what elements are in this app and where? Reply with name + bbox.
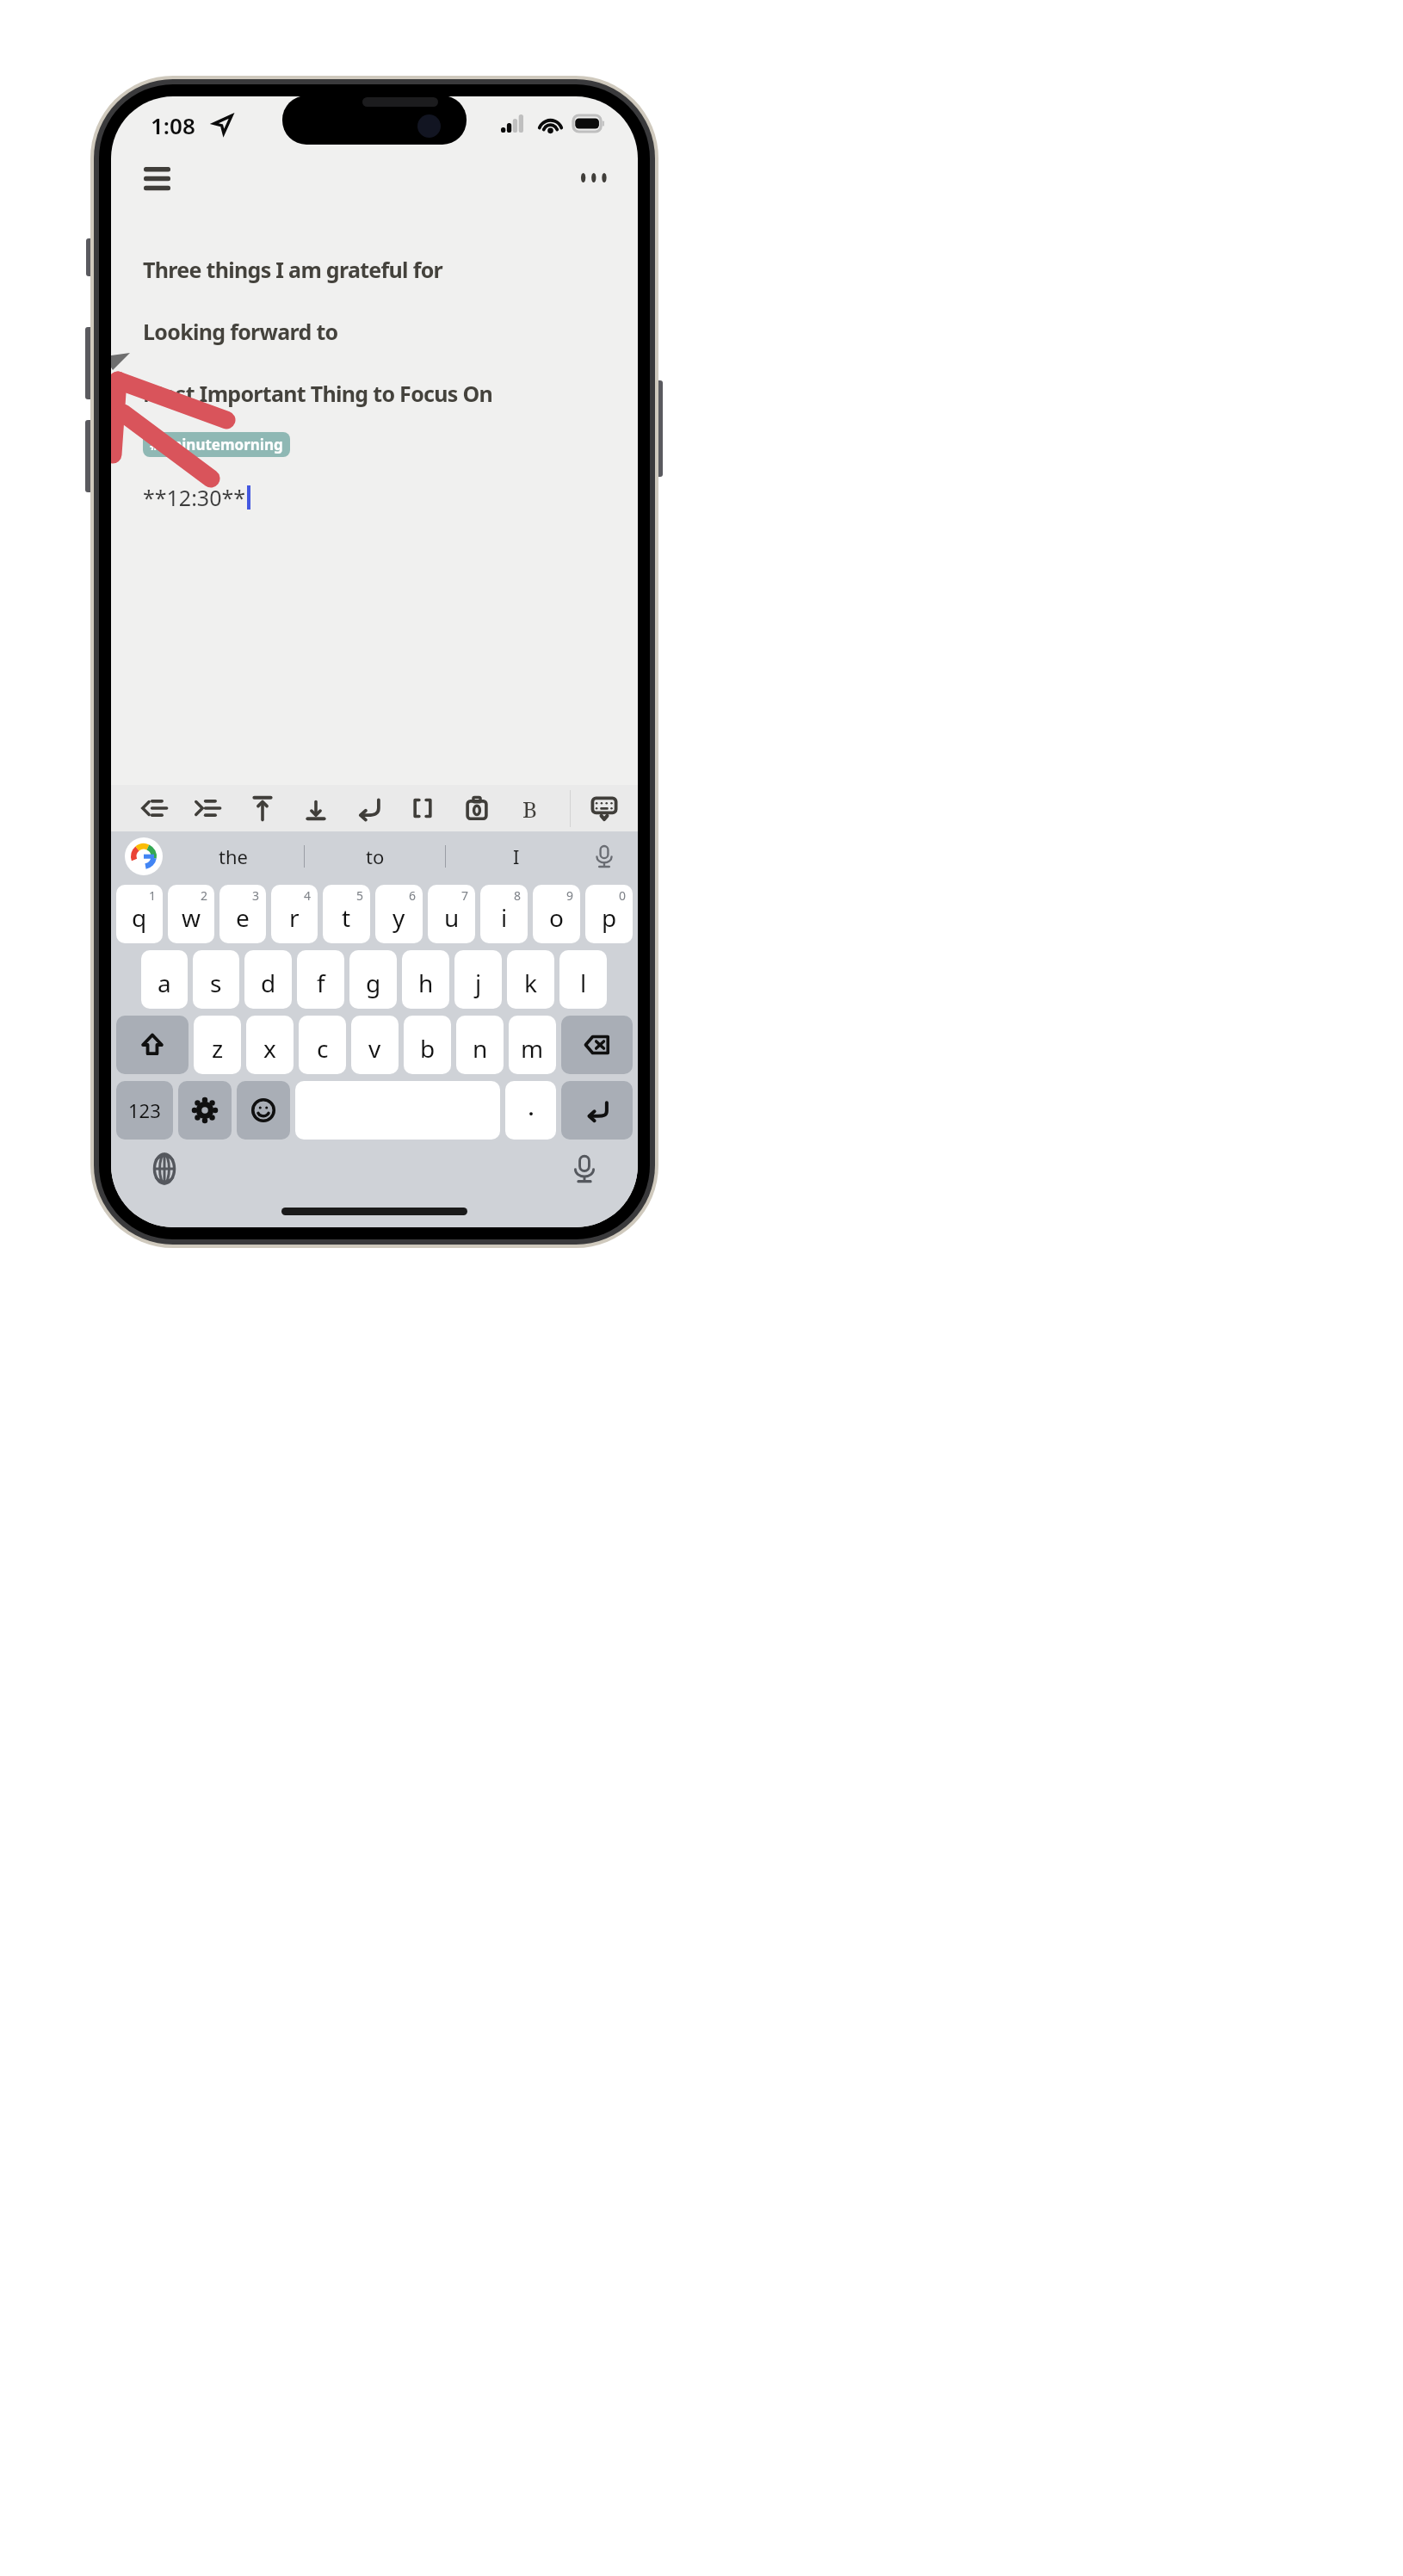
staticText: c bbox=[317, 1032, 329, 1065]
button[interactable]: p bbox=[585, 885, 633, 943]
button[interactable]: New line bbox=[355, 794, 384, 823]
button[interactable]: Space bbox=[295, 1081, 500, 1140]
button[interactable]: Bold bbox=[516, 794, 545, 823]
button[interactable]: More options bbox=[569, 152, 619, 202]
staticText: b bbox=[420, 1032, 436, 1065]
staticText: 7 bbox=[461, 887, 469, 904]
button[interactable]: Menu bbox=[132, 152, 182, 202]
button[interactable]: Period bbox=[505, 1081, 556, 1140]
staticText: o bbox=[549, 901, 564, 934]
button[interactable]: r bbox=[271, 885, 318, 943]
staticText: p bbox=[602, 901, 617, 934]
staticText: m bbox=[521, 1032, 544, 1065]
staticText: **12:30** bbox=[143, 483, 246, 512]
button[interactable]: Move to top bbox=[248, 794, 277, 823]
button[interactable]: Shift bbox=[116, 1016, 189, 1074]
button[interactable]: Hide keyboard bbox=[571, 785, 638, 831]
staticText: g bbox=[366, 967, 381, 999]
staticText: d bbox=[261, 967, 276, 999]
button[interactable]: i bbox=[480, 885, 528, 943]
button[interactable]: Google bbox=[125, 837, 163, 875]
staticText: 3 bbox=[252, 887, 260, 904]
staticText: 9 bbox=[566, 887, 574, 904]
button[interactable]: l bbox=[559, 950, 607, 1009]
button[interactable]: Change language bbox=[144, 1148, 185, 1189]
button[interactable]: h bbox=[402, 950, 449, 1009]
staticText: i bbox=[501, 901, 508, 934]
button[interactable]: Brackets bbox=[408, 794, 437, 823]
button[interactable]: s bbox=[193, 950, 239, 1009]
staticText: I bbox=[513, 843, 520, 869]
staticText: q bbox=[132, 901, 147, 934]
button[interactable]: w bbox=[168, 885, 214, 943]
button[interactable]: Settings bbox=[178, 1081, 232, 1140]
button[interactable]: Emoji bbox=[237, 1081, 290, 1140]
staticText: y bbox=[392, 901, 405, 934]
button[interactable]: k bbox=[507, 950, 554, 1009]
staticText: v bbox=[368, 1032, 381, 1065]
staticText: k bbox=[524, 967, 537, 999]
button[interactable]: n bbox=[456, 1016, 504, 1074]
button[interactable]: v bbox=[351, 1016, 399, 1074]
button[interactable]: I bbox=[446, 831, 586, 881]
staticText: r bbox=[289, 901, 300, 934]
staticText: n bbox=[473, 1032, 488, 1065]
button[interactable]: u bbox=[428, 885, 475, 943]
staticText: w bbox=[182, 901, 201, 934]
button[interactable]: z bbox=[194, 1016, 241, 1074]
button[interactable]: y bbox=[375, 885, 423, 943]
button[interactable]: #3minutemorning bbox=[143, 432, 290, 457]
button[interactable]: Voice typing bbox=[564, 1148, 605, 1189]
button[interactable]: j bbox=[454, 950, 502, 1009]
staticText: u bbox=[444, 901, 460, 934]
button[interactable]: o bbox=[533, 885, 580, 943]
button[interactable]: Backspace bbox=[561, 1016, 633, 1074]
staticText: 8 bbox=[514, 887, 522, 904]
staticText: to bbox=[366, 843, 385, 869]
button[interactable]: to bbox=[305, 831, 445, 881]
button[interactable]: Camera bbox=[462, 794, 491, 823]
button[interactable]: b bbox=[404, 1016, 451, 1074]
button[interactable]: a bbox=[141, 950, 188, 1009]
staticText: e bbox=[236, 901, 250, 934]
button[interactable]: Looking forward to bbox=[143, 317, 338, 346]
button[interactable]: Enter bbox=[561, 1081, 633, 1140]
staticText: 6 bbox=[409, 887, 417, 904]
staticText: 1:08 bbox=[151, 110, 195, 140]
staticText: s bbox=[210, 967, 222, 999]
button[interactable]: 123 bbox=[116, 1081, 173, 1140]
button[interactable]: Move to bottom bbox=[301, 794, 331, 823]
button[interactable]: Outdent bbox=[140, 794, 170, 823]
button[interactable]: q bbox=[116, 885, 163, 943]
button[interactable]: Three things I am grateful for bbox=[143, 255, 443, 284]
staticText: t bbox=[342, 901, 351, 934]
staticText: 2 bbox=[201, 887, 208, 904]
staticText: 123 bbox=[128, 1097, 161, 1123]
button[interactable]: m bbox=[509, 1016, 556, 1074]
button[interactable]: the bbox=[163, 831, 304, 881]
button[interactable]: g bbox=[349, 950, 397, 1009]
staticText: the bbox=[219, 843, 248, 869]
staticText: 5 bbox=[356, 887, 364, 904]
staticText: l bbox=[580, 967, 587, 999]
staticText: x bbox=[263, 1032, 276, 1065]
staticText: B bbox=[522, 794, 538, 823]
button[interactable]: Most Important Thing to Focus On bbox=[143, 379, 493, 408]
button[interactable]: f bbox=[297, 950, 344, 1009]
staticText: 1 bbox=[149, 887, 157, 904]
staticText: 4 bbox=[304, 887, 312, 904]
staticText: 0 bbox=[619, 887, 627, 904]
button[interactable]: c bbox=[299, 1016, 346, 1074]
staticText: h bbox=[418, 967, 434, 999]
button[interactable]: d bbox=[244, 950, 292, 1009]
staticText: a bbox=[158, 967, 171, 999]
staticText: j bbox=[475, 967, 482, 999]
staticText: z bbox=[212, 1032, 224, 1065]
button[interactable]: e bbox=[219, 885, 266, 943]
button[interactable]: Indent bbox=[194, 794, 223, 823]
button[interactable]: Voice input bbox=[586, 838, 622, 874]
button[interactable]: x bbox=[246, 1016, 294, 1074]
staticText: f bbox=[317, 967, 325, 999]
staticText: #3minutemorning bbox=[150, 435, 283, 454]
button[interactable]: t bbox=[323, 885, 370, 943]
